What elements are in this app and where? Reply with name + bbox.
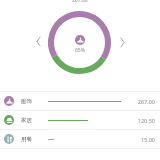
staticText: 65% — [75, 47, 85, 54]
staticText: 267.00 — [72, 0, 88, 4]
button[interactable]: 用餐 — [0, 130, 160, 148]
button[interactable]: 服饰 — [0, 92, 160, 110]
staticText: 家居 — [21, 117, 32, 124]
button[interactable]: Next month — [114, 34, 130, 50]
staticText: 120.50 — [137, 117, 155, 124]
button[interactable]: Previous month — [30, 33, 46, 49]
button[interactable]: 家居 — [0, 111, 160, 129]
staticText: 服饰 — [21, 98, 32, 105]
staticText: 15.00 — [140, 136, 155, 143]
staticText: 用餐 — [21, 136, 32, 143]
staticText: 267.00 — [137, 98, 155, 105]
